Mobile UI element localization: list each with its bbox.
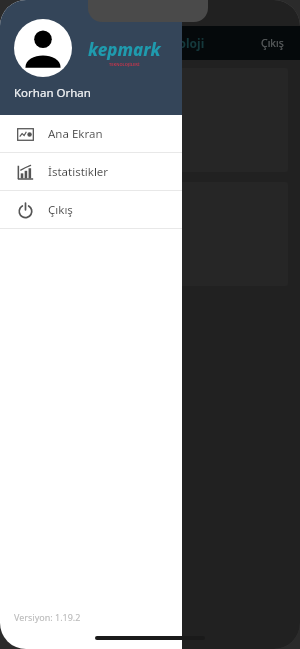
staticText: Versiyon: 1.19.2	[14, 611, 81, 623]
button[interactable]: Tespit Et	[12, 68, 288, 172]
other: Ana Ekran	[17, 126, 34, 143]
staticText: TEKNOLOJİLERİ	[109, 62, 140, 67]
staticText: Ana Ekran	[48, 126, 103, 142]
button[interactable]: Tespitlerim	[12, 182, 288, 286]
button[interactable]: Ana Ekran	[0, 115, 182, 152]
other: İstatistikler	[17, 164, 34, 181]
button[interactable]: Çıkış	[257, 32, 288, 54]
button[interactable]: Çıkış	[0, 191, 182, 228]
staticText: Teknoloji	[150, 35, 205, 51]
other: Çıkış	[17, 202, 34, 219]
staticText: İstatistikler	[48, 164, 109, 180]
staticText: Tespit Et	[128, 139, 172, 154]
staticText: Çıkış	[48, 202, 73, 218]
staticText: Çıkış	[261, 36, 284, 50]
staticText: Korhan Orhan	[14, 85, 91, 101]
button[interactable]: İstatistikler	[0, 153, 182, 190]
staticText: kepmark	[88, 38, 161, 61]
